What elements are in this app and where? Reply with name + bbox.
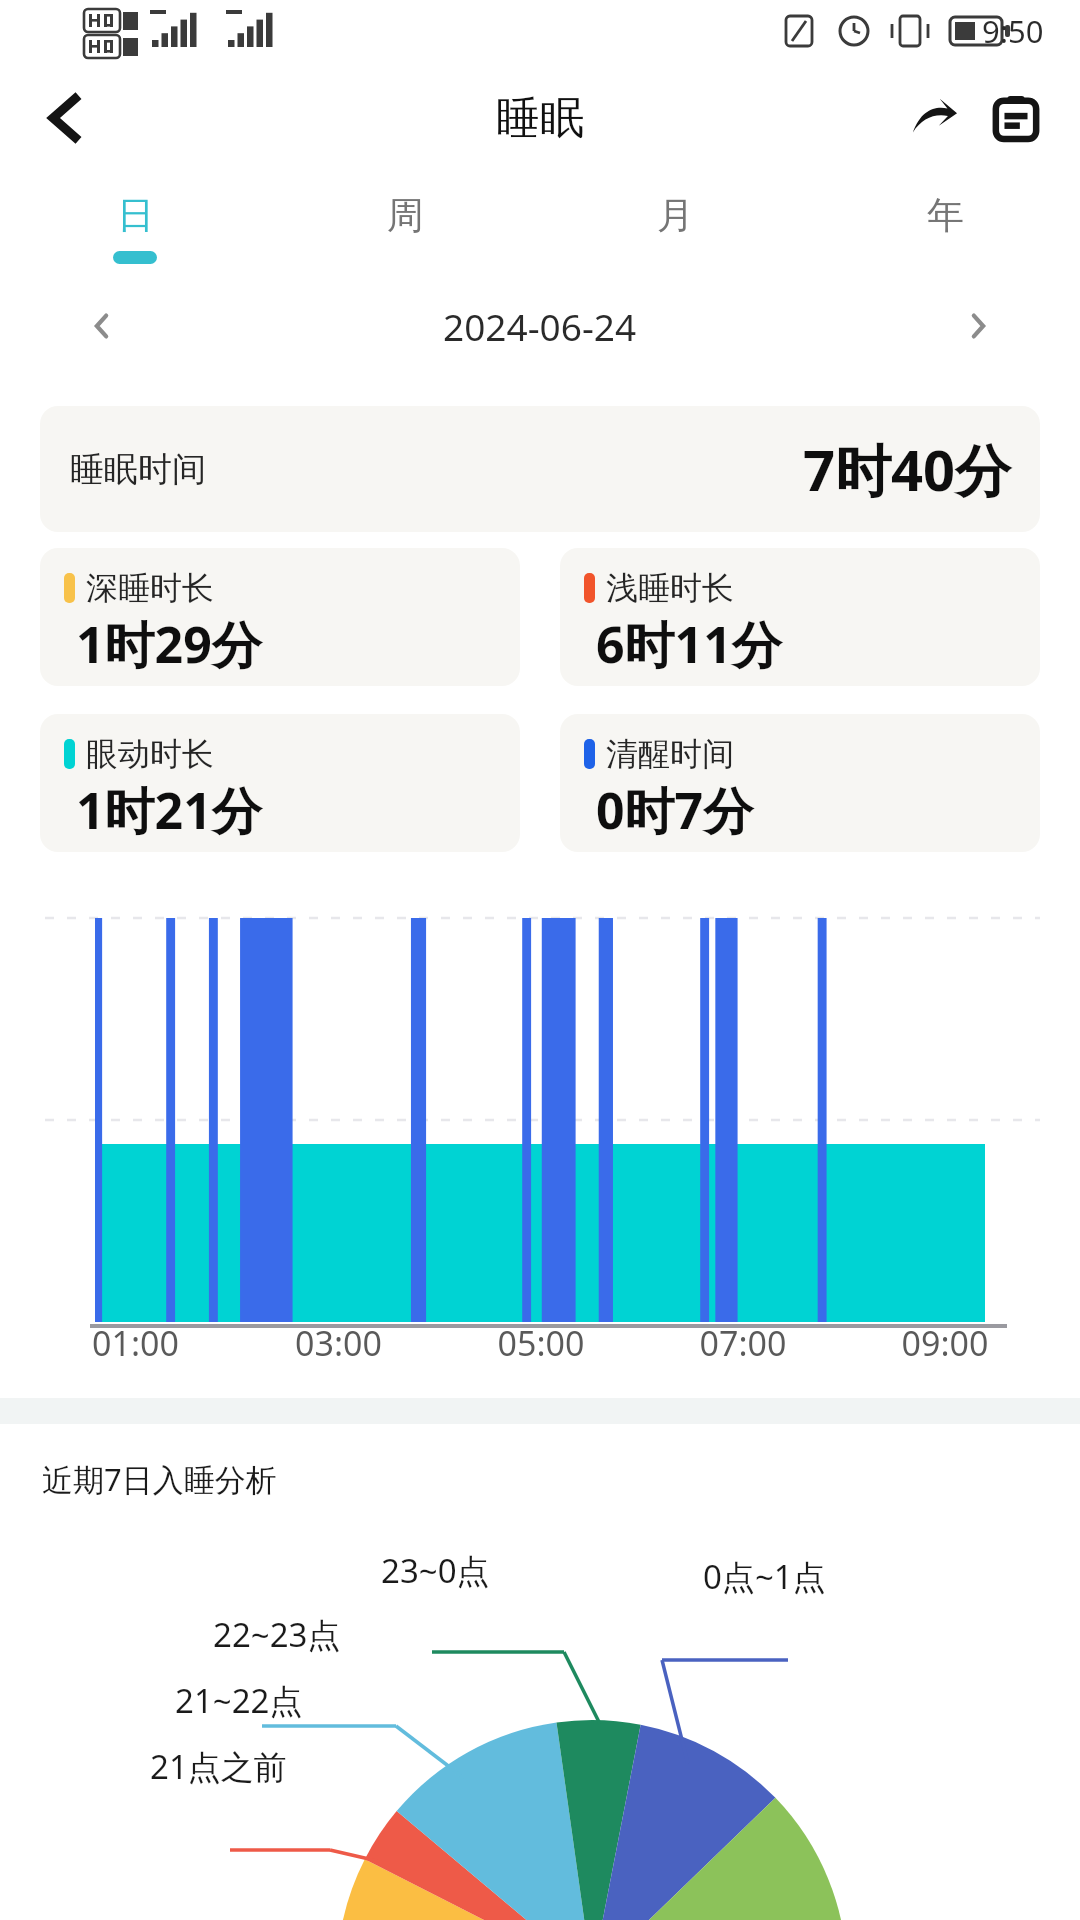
button[interactable]: Records <box>978 80 1054 156</box>
staticText: 清醒时间 <box>606 734 734 774</box>
button[interactable]: 睡眠时间 <box>40 406 1040 532</box>
staticText: 6时11分 <box>596 610 782 678</box>
staticText: 21~22点 <box>175 1678 303 1723</box>
button[interactable]: Previous day <box>74 298 130 354</box>
staticText: 周 <box>387 192 424 239</box>
staticText: 1时29分 <box>76 610 262 678</box>
staticText: 7时40分 <box>803 431 1012 507</box>
staticText: 年 <box>927 192 964 239</box>
button[interactable]: 月 <box>540 174 810 282</box>
staticText: 睡眠 <box>496 91 584 146</box>
staticText: 21点之前 <box>150 1744 287 1789</box>
staticText: 月 <box>657 192 694 239</box>
staticText: 9:50 <box>982 10 1044 52</box>
staticText: 23~0点 <box>381 1548 490 1593</box>
staticText: 浅睡时长 <box>606 568 734 608</box>
staticText: 日 <box>117 192 154 239</box>
button[interactable]: 周 <box>270 174 540 282</box>
staticText: 1时21分 <box>76 776 262 844</box>
staticText: 07:00 <box>642 1320 844 1366</box>
button[interactable]: 日 <box>0 174 270 282</box>
button[interactable]: 眼动时长 <box>40 714 520 852</box>
staticText: 05:00 <box>440 1320 642 1366</box>
button[interactable]: 清醒时间 <box>560 714 1040 852</box>
button[interactable]: 深睡时长 <box>40 548 520 686</box>
staticText: 22~23点 <box>213 1612 341 1657</box>
staticText: 03:00 <box>237 1320 440 1366</box>
staticText: 01:00 <box>34 1320 237 1366</box>
staticText: 0时7分 <box>596 776 754 844</box>
staticText: 睡眠时间 <box>70 448 206 491</box>
button[interactable]: Next day <box>950 298 1006 354</box>
staticText: 0点~1点 <box>703 1554 826 1599</box>
staticText: 深睡时长 <box>86 568 214 608</box>
button[interactable]: Back <box>26 79 104 157</box>
button[interactable]: Share <box>896 80 972 156</box>
staticText: 眼动时长 <box>86 734 214 774</box>
staticText: 2024-06-24 <box>443 301 637 351</box>
button[interactable]: 年 <box>810 174 1080 282</box>
button[interactable]: 浅睡时长 <box>560 548 1040 686</box>
staticText: 近期7日入睡分析 <box>42 1458 277 1500</box>
staticText: 09:00 <box>844 1320 1046 1366</box>
